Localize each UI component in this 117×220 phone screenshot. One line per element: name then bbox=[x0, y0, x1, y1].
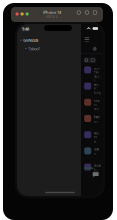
staticText: Sun bbox=[94, 120, 99, 123]
button[interactable]: Recipe bbox=[84, 99, 101, 106]
staticText: Thu bbox=[94, 169, 99, 172]
staticText: Sat bbox=[94, 140, 97, 143]
staticText: Mon bbox=[94, 107, 100, 111]
button[interactable]: Genesis bbox=[84, 66, 101, 74]
button[interactable]: Notes bbox=[84, 131, 101, 139]
staticText: Fri bbox=[94, 152, 97, 156]
button[interactable]: Appearance bbox=[85, 11, 89, 14]
staticText: Taboo bbox=[94, 75, 101, 82]
staticText: Mirror bbox=[94, 83, 100, 90]
button[interactable]: Close bbox=[15, 12, 19, 16]
staticText: iPhone 14 bbox=[43, 10, 61, 15]
button[interactable]: Search bbox=[84, 57, 96, 63]
button[interactable]: Travel bbox=[84, 115, 101, 123]
button[interactable]: Menu bbox=[85, 38, 89, 42]
staticText: Today bbox=[94, 91, 101, 95]
staticText: Ideas bbox=[94, 164, 101, 167]
button[interactable]: Home bbox=[92, 46, 97, 51]
staticText: 9:48 bbox=[22, 26, 29, 31]
staticText: Notes bbox=[94, 132, 100, 139]
button[interactable]: New message bbox=[92, 172, 99, 179]
staticText: Draft bbox=[94, 148, 100, 151]
button[interactable]: Draft bbox=[84, 147, 101, 155]
button[interactable]: Zoom bbox=[25, 12, 29, 16]
button[interactable]: Ideas bbox=[84, 164, 101, 171]
button[interactable]: Minimize bbox=[20, 12, 24, 16]
button[interactable]: Mirror bbox=[84, 83, 101, 90]
button[interactable]: More options bbox=[93, 11, 96, 14]
staticText: Travel bbox=[94, 115, 101, 119]
staticText: Genesis bbox=[94, 67, 101, 74]
staticText: Recipe bbox=[94, 99, 101, 106]
staticText: iOS 16.2 bbox=[46, 15, 58, 19]
staticText: Taboo? bbox=[28, 46, 40, 51]
staticText: GENESIS bbox=[23, 37, 38, 43]
button[interactable]: Rotate device bbox=[77, 11, 81, 14]
